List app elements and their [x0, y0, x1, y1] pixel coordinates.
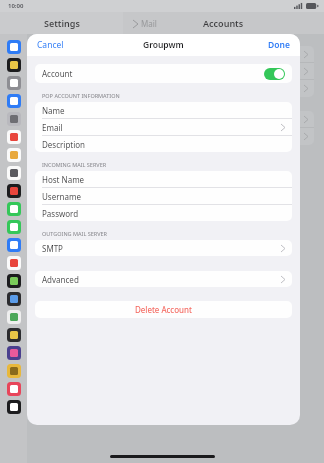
- staticText: SMTP: [42, 243, 63, 254]
- button[interactable]: App icon: [7, 112, 21, 126]
- button[interactable]: Account enabled: [264, 68, 285, 80]
- staticText: Password: [42, 208, 79, 219]
- staticText: 10:00: [8, 2, 24, 10]
- staticText: Accounts: [203, 17, 244, 29]
- staticText: Cancel: [37, 39, 64, 51]
- button[interactable]: App icon: [7, 292, 21, 306]
- staticText: Groupwm: [143, 39, 184, 51]
- button[interactable]: App icon: [7, 76, 21, 90]
- button[interactable]: [37, 63, 314, 80]
- button[interactable]: Done: [266, 36, 292, 54]
- staticText: Description: [42, 139, 86, 150]
- button[interactable]: Description: [35, 136, 292, 152]
- staticText: Name: [42, 105, 65, 116]
- button[interactable]: App icon: [7, 238, 21, 252]
- staticText: Delete Account: [135, 304, 192, 315]
- button[interactable]: Account: [35, 64, 292, 83]
- staticText: Email: [42, 122, 63, 133]
- button[interactable]: App icon: [7, 94, 21, 108]
- button[interactable]: App icon: [7, 202, 21, 216]
- button[interactable]: Delete Account: [35, 301, 292, 318]
- staticText: Username: [42, 191, 81, 202]
- button[interactable]: App icon: [7, 166, 21, 180]
- staticText: POP ACCOUNT INFORMATION: [42, 92, 120, 99]
- staticText: Account: [42, 68, 73, 79]
- button[interactable]: [37, 128, 314, 145]
- button[interactable]: App icon: [7, 58, 21, 72]
- button[interactable]: [37, 111, 314, 128]
- button[interactable]: [37, 80, 314, 97]
- button[interactable]: App icon: [7, 364, 21, 378]
- staticText: Done: [268, 39, 290, 51]
- button[interactable]: App icon: [7, 400, 21, 414]
- button[interactable]: App icon: [7, 328, 21, 342]
- button[interactable]: App icon: [7, 184, 21, 198]
- button[interactable]: Host Name: [35, 171, 292, 187]
- button[interactable]: Email: [35, 119, 292, 135]
- staticText: OUTGOING MAIL SERVER: [42, 230, 107, 237]
- button[interactable]: Username: [35, 188, 292, 204]
- button[interactable]: App icon: [7, 148, 21, 162]
- staticText: Advanced: [42, 274, 79, 285]
- button[interactable]: App icon: [7, 346, 21, 360]
- button[interactable]: App icon: [7, 40, 21, 54]
- staticText: INCOMING MAIL SERVER: [42, 161, 107, 168]
- staticText: Host Name: [42, 174, 85, 185]
- button[interactable]: App icon: [7, 310, 21, 324]
- staticText: Settings: [44, 17, 80, 29]
- button[interactable]: Password: [35, 205, 292, 221]
- button[interactable]: App icon: [7, 274, 21, 288]
- button[interactable]: Cancel: [35, 36, 66, 54]
- button[interactable]: App icon: [7, 382, 21, 396]
- button[interactable]: [37, 46, 314, 63]
- button[interactable]: App icon: [7, 256, 21, 270]
- button[interactable]: Advanced: [35, 271, 292, 287]
- button[interactable]: Mail: [131, 16, 159, 31]
- button[interactable]: SMTP: [35, 240, 292, 256]
- button[interactable]: App icon: [7, 220, 21, 234]
- button[interactable]: Name: [35, 102, 292, 118]
- button[interactable]: App icon: [7, 130, 21, 144]
- staticText: Mail: [141, 18, 157, 29]
